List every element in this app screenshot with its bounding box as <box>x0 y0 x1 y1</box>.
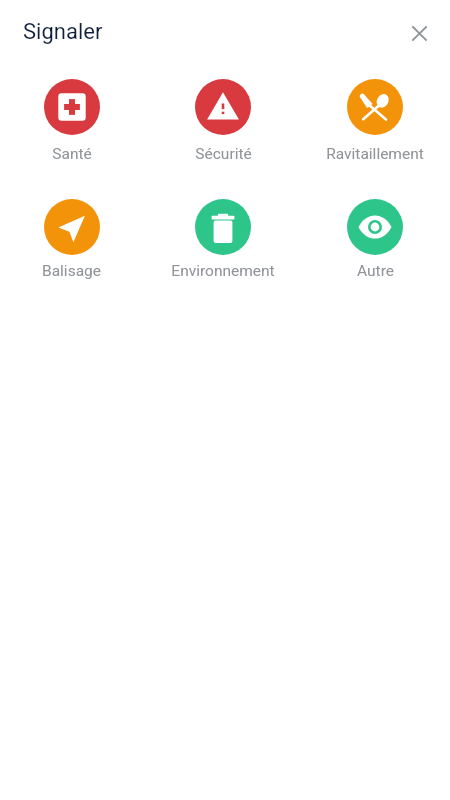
staticText: Ravitaillement <box>326 145 424 163</box>
staticText: Santé <box>52 145 92 163</box>
button[interactable]: Ravitaillement <box>299 79 450 163</box>
staticText: Autre <box>357 262 394 280</box>
button[interactable]: Autre <box>299 199 450 280</box>
button[interactable]: Close <box>403 17 435 49</box>
staticText: Signaler <box>23 19 103 45</box>
staticText: Environnement <box>171 262 275 280</box>
button[interactable]: Environnement <box>147 199 299 280</box>
button[interactable]: Santé <box>0 79 147 163</box>
button[interactable]: Sécurité <box>147 79 299 163</box>
staticText: Sécurité <box>195 145 252 163</box>
button[interactable]: Balisage <box>0 199 147 280</box>
staticText: Balisage <box>42 262 101 280</box>
